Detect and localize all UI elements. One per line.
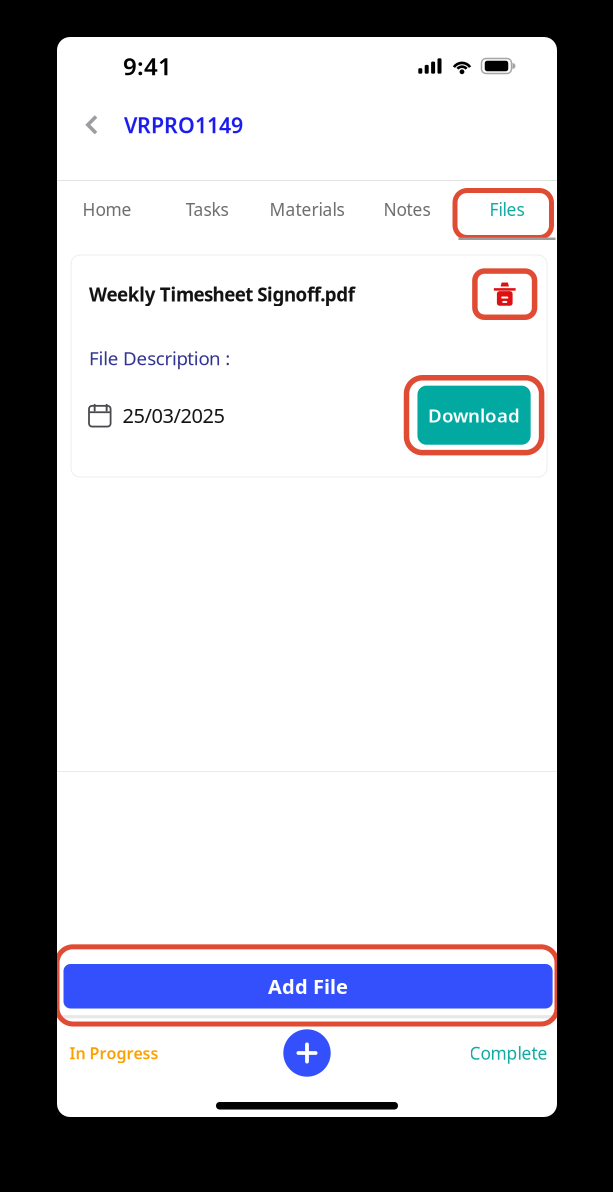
staticText: Tasks xyxy=(185,198,228,221)
staticText: Materials xyxy=(269,198,344,221)
staticText: 25/03/2025 xyxy=(123,402,225,428)
button[interactable]: Tasks xyxy=(157,181,257,241)
button[interactable]: Complete xyxy=(337,1016,557,1090)
button[interactable]: Home xyxy=(57,181,157,241)
staticText: In Progress xyxy=(69,1042,158,1064)
staticText: Weekly Timesheet Signoff.pdf xyxy=(89,282,355,307)
staticText: File Description : xyxy=(89,346,230,370)
staticText: Files xyxy=(489,198,524,221)
staticText: Complete xyxy=(470,1041,548,1064)
button[interactable]: Add xyxy=(283,1029,331,1077)
staticText: Home xyxy=(82,198,131,221)
button[interactable]: Notes xyxy=(357,181,457,241)
button[interactable]: Add File xyxy=(57,947,557,1016)
staticText: Add File xyxy=(268,973,348,1000)
button[interactable]: In Progress xyxy=(57,1016,277,1090)
button[interactable]: Back xyxy=(72,102,111,147)
staticText: Notes xyxy=(383,198,430,221)
button[interactable]: Materials xyxy=(257,181,357,241)
button[interactable]: Download xyxy=(406,378,535,453)
staticText: Download xyxy=(428,403,520,428)
button[interactable]: Files xyxy=(457,181,557,241)
staticText: VRPRO1149 xyxy=(124,111,243,139)
button[interactable]: Delete file xyxy=(475,271,535,317)
staticText: 9:41 xyxy=(123,50,172,82)
